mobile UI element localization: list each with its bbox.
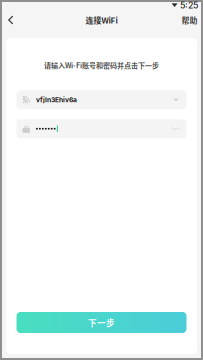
button[interactable]: Show password [165,120,179,138]
staticText: 5:25 [180,0,198,10]
staticText: 下一步 [88,316,115,329]
button[interactable]: Back [2,8,23,31]
button[interactable]: 下一步 [16,312,186,333]
staticText: 请输入Wi-Fi账号和密码并点击下一步 [44,60,159,70]
staticText: 连接WiFi [85,14,117,26]
button[interactable]: Choose network [167,91,179,109]
staticText: vfjIn3Ehiv6a [36,96,77,104]
staticText: 帮助 [181,14,197,26]
button[interactable]: 帮助 [172,8,201,31]
